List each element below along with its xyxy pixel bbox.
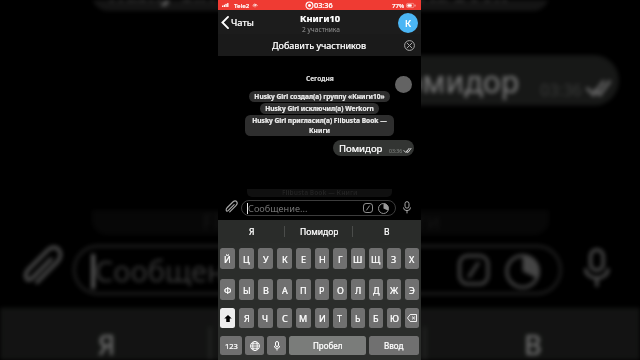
- button[interactable]: Attach: [19, 248, 60, 289]
- button[interactable]: Timer: [378, 203, 389, 214]
- button[interactable]: Ы: [239, 279, 254, 300]
- staticText: Э: [409, 284, 415, 296]
- button[interactable]: Х: [405, 248, 419, 269]
- button[interactable]: Добавить участников: [218, 34, 421, 56]
- button[interactable]: Чаты: [221, 16, 254, 29]
- button[interactable]: В: [353, 220, 421, 243]
- staticText: Помидор: [339, 142, 383, 155]
- button[interactable]: Помидор: [212, 308, 426, 360]
- staticText: Й: [224, 253, 231, 265]
- staticText: 03:36: [540, 77, 584, 99]
- staticText: Tele2: [234, 1, 250, 9]
- button[interactable]: Я: [239, 308, 254, 328]
- button[interactable]: Husky Girl пригласил(а) Flibusta Book — …: [245, 115, 394, 136]
- staticText: Сообщение...: [95, 251, 284, 292]
- button[interactable]: Stickers: [458, 254, 489, 286]
- button[interactable]: Husky Girl создал(а) группу «Книги10»: [249, 91, 390, 102]
- button[interactable]: О: [333, 279, 347, 300]
- button[interactable]: Щ: [369, 248, 383, 269]
- button[interactable]: И: [315, 308, 329, 328]
- button[interactable]: Ц: [239, 248, 254, 269]
- button[interactable]: Помидор: [285, 220, 353, 243]
- button[interactable]: Г: [333, 248, 347, 269]
- button[interactable]: Р: [315, 279, 329, 300]
- button[interactable]: Ч: [258, 308, 273, 328]
- button[interactable]: Voice message: [403, 201, 411, 214]
- staticText: Ы: [243, 284, 251, 296]
- staticText: Flibusta Book — Книги: [282, 189, 358, 196]
- button[interactable]: Backspace: [405, 308, 419, 328]
- button[interactable]: Е: [296, 248, 311, 269]
- staticText: В: [524, 327, 543, 360]
- staticText: У: [263, 253, 269, 265]
- button[interactable]: Stickers: [363, 203, 373, 213]
- staticText: Я: [98, 327, 117, 360]
- staticText: С: [282, 312, 288, 324]
- staticText: К: [405, 17, 412, 30]
- button[interactable]: Сообщение...: [241, 200, 396, 216]
- button[interactable]: А: [277, 279, 292, 300]
- button[interactable]: Б: [369, 308, 383, 328]
- button[interactable]: Сообщение...: [73, 245, 562, 295]
- staticText: М: [299, 312, 308, 324]
- button[interactable]: Husky Girl пригласил(а) Flibusta Book —: [92, 0, 549, 11]
- staticText: Е: [301, 253, 307, 265]
- button[interactable]: У: [258, 248, 273, 269]
- button[interactable]: Пробел: [289, 336, 366, 355]
- button[interactable]: Я: [0, 308, 212, 360]
- staticText: Ввод: [384, 340, 404, 351]
- staticText: Ю: [390, 312, 399, 324]
- button[interactable]: Д: [369, 279, 383, 300]
- staticText: Husky Girl пригласил(а) Flibusta Book — …: [250, 116, 389, 135]
- button[interactable]: В: [258, 279, 273, 300]
- button[interactable]: Husky Girl исключил(а) Werkorn: [260, 103, 379, 114]
- staticText: Помидор: [300, 226, 339, 238]
- button[interactable]: Close: [404, 40, 415, 51]
- button[interactable]: Н: [315, 248, 329, 269]
- button[interactable]: Ь: [351, 308, 365, 328]
- button[interactable]: Attach: [224, 201, 237, 214]
- button[interactable]: Т: [333, 308, 347, 328]
- staticText: Ш: [353, 253, 363, 265]
- button[interactable]: Л: [351, 279, 365, 300]
- button[interactable]: З: [387, 248, 401, 269]
- button[interactable]: Й: [220, 248, 235, 269]
- staticText: Я: [249, 226, 255, 238]
- button[interactable]: Помидор: [363, 55, 619, 106]
- staticText: Л: [355, 284, 362, 296]
- button[interactable]: Помидор: [333, 140, 414, 156]
- staticText: Сегодня: [306, 74, 334, 83]
- button[interactable]: П: [296, 279, 311, 300]
- staticText: 77%: [392, 1, 405, 9]
- staticText: Д: [373, 284, 380, 296]
- button[interactable]: Ввод: [369, 336, 419, 355]
- staticText: 03:36: [314, 0, 333, 10]
- staticText: О: [337, 284, 344, 296]
- staticText: А: [282, 284, 288, 296]
- staticText: Ж: [390, 284, 399, 296]
- staticText: Husky Girl создал(а) группу «Книги10»: [254, 92, 385, 101]
- button[interactable]: 123: [220, 336, 242, 355]
- button[interactable]: Change language: [245, 336, 264, 355]
- staticText: П: [300, 284, 307, 296]
- button[interactable]: Ю: [387, 308, 401, 328]
- button[interactable]: Group avatar: [398, 13, 418, 33]
- button[interactable]: Э: [405, 279, 419, 300]
- button[interactable]: Ш: [351, 248, 365, 269]
- button[interactable]: Ф: [220, 279, 235, 300]
- button[interactable]: М: [296, 308, 311, 328]
- button[interactable]: Timer: [505, 254, 540, 289]
- staticText: В: [384, 226, 390, 238]
- button[interactable]: Я: [218, 220, 285, 243]
- button[interactable]: Shift: [220, 308, 235, 328]
- staticText: Ч: [262, 312, 269, 324]
- button[interactable]: С: [277, 308, 292, 328]
- button[interactable]: Dictation: [267, 336, 286, 355]
- button[interactable]: К: [277, 248, 292, 269]
- button[interactable]: Ж: [387, 279, 401, 300]
- staticText: Ц: [243, 253, 250, 265]
- button[interactable]: В: [426, 308, 640, 360]
- button[interactable]: Voice message: [584, 248, 609, 289]
- staticText: Т: [337, 312, 343, 324]
- staticText: Книги10: [300, 12, 341, 25]
